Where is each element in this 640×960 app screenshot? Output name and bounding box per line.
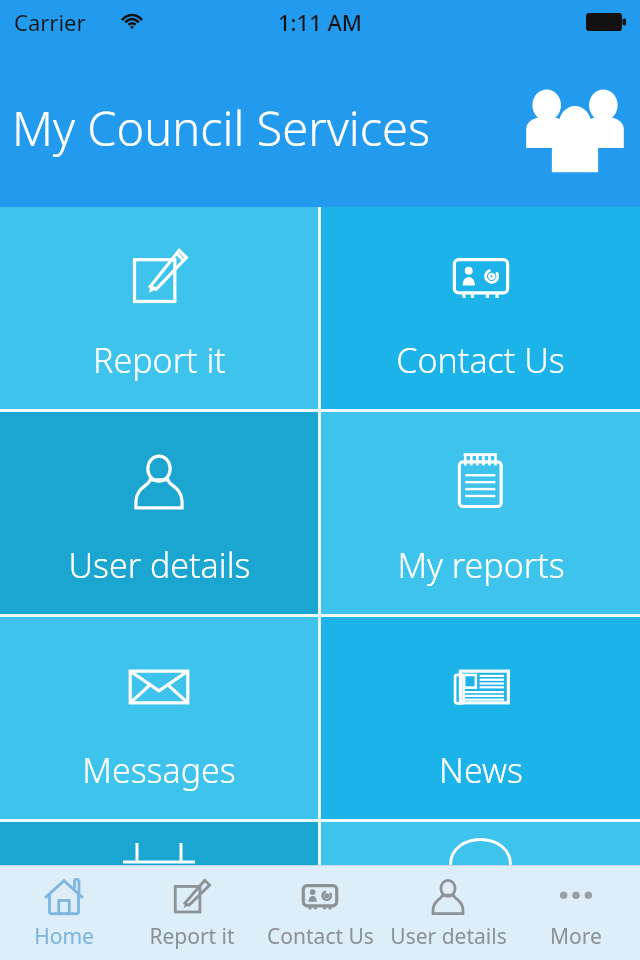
staticText: User details <box>390 922 507 951</box>
button[interactable]: Contact Us <box>321 207 640 409</box>
button[interactable]: News <box>321 617 640 819</box>
button[interactable] <box>321 822 640 865</box>
staticText: 1:11 AM <box>278 7 363 37</box>
staticText: Contact Us <box>267 922 374 951</box>
other: Logo <box>516 76 634 176</box>
button[interactable]: My reports <box>321 412 640 614</box>
staticText: My reports <box>397 542 565 588</box>
button[interactable]: More <box>512 866 640 960</box>
staticText: More <box>550 922 602 951</box>
button[interactable]: User details <box>384 866 512 960</box>
staticText: Home <box>34 922 94 951</box>
staticText: Messages <box>82 747 236 793</box>
staticText: User details <box>68 542 251 588</box>
button[interactable]: Report it <box>128 866 256 960</box>
button[interactable]: User details <box>0 412 318 614</box>
staticText: Report it <box>93 337 226 383</box>
button[interactable]: Messages <box>0 617 318 819</box>
staticText: My Council Services <box>12 96 430 160</box>
button[interactable]: Report it <box>0 207 318 409</box>
button[interactable]: Home <box>0 866 128 960</box>
button[interactable] <box>0 822 318 865</box>
staticText: Contact Us <box>396 337 565 383</box>
button[interactable]: Contact Us <box>256 866 384 960</box>
staticText: News <box>439 747 523 793</box>
staticText: Report it <box>149 922 235 951</box>
staticText: Carrier <box>14 7 86 37</box>
